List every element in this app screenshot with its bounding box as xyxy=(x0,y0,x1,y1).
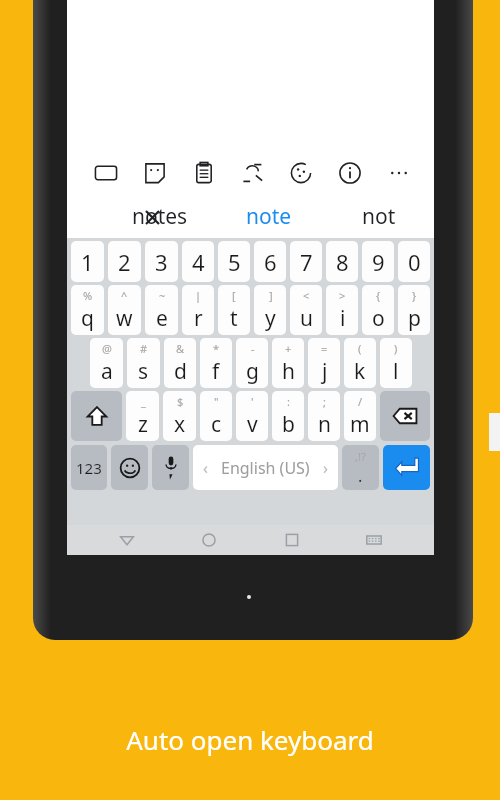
button[interactable]: info xyxy=(333,156,367,190)
button[interactable]: 8 xyxy=(326,241,358,282)
button[interactable]: ' xyxy=(236,391,268,441)
button[interactable]: ,!? xyxy=(342,445,379,490)
button[interactable]: 123 xyxy=(71,445,107,490)
button[interactable]: 9 xyxy=(362,241,394,282)
button[interactable]: notes xyxy=(105,195,214,238)
staticText: Auto open keyboard xyxy=(126,722,374,757)
button[interactable]: ) xyxy=(380,338,412,388)
staticText: 1 xyxy=(81,247,94,277)
button[interactable]: 7 xyxy=(290,241,322,282)
staticText: } xyxy=(412,288,417,303)
staticText: k xyxy=(354,357,366,386)
staticText: l xyxy=(393,357,399,386)
button[interactable]: } xyxy=(398,285,430,335)
button[interactable]: & xyxy=(164,338,196,388)
button[interactable]: Voice input xyxy=(152,445,189,490)
button[interactable]: : xyxy=(272,391,304,441)
staticText: / xyxy=(358,394,363,409)
staticText: ) xyxy=(394,341,398,356)
button[interactable]: ~ xyxy=(145,285,178,335)
button[interactable]: / xyxy=(344,391,376,441)
button[interactable]: % xyxy=(71,285,104,335)
button[interactable]: theme xyxy=(284,156,318,190)
button[interactable]: gif xyxy=(89,156,123,190)
staticText: * xyxy=(213,341,220,356)
staticText: 9 xyxy=(372,247,385,277)
button[interactable]: < xyxy=(290,285,322,335)
staticText: # xyxy=(140,341,148,356)
staticText: note xyxy=(246,202,292,231)
staticText: n xyxy=(318,410,331,439)
staticText: 3 xyxy=(155,247,168,277)
staticText: w xyxy=(116,304,133,333)
button[interactable]: { xyxy=(362,285,394,335)
button[interactable]: - xyxy=(236,338,268,388)
button[interactable]: Enter xyxy=(383,445,430,490)
button[interactable]: ( xyxy=(344,338,376,388)
staticText: - xyxy=(251,341,255,356)
button[interactable]: not xyxy=(324,195,434,238)
button[interactable]: > xyxy=(326,285,358,335)
staticText: b xyxy=(282,410,295,439)
button[interactable]: Close xyxy=(137,202,167,232)
button[interactable]: 5 xyxy=(218,241,250,282)
staticText: 8 xyxy=(336,247,349,277)
button[interactable]: Backspace xyxy=(380,391,430,441)
button[interactable]: clipboard xyxy=(187,156,221,190)
staticText: ~ xyxy=(159,288,166,303)
staticText: ,!? xyxy=(355,449,366,464)
staticText: i xyxy=(340,304,346,333)
button[interactable]: [ xyxy=(218,285,250,335)
staticText: x xyxy=(174,410,186,439)
button[interactable]: Home xyxy=(187,526,231,554)
button[interactable]: " xyxy=(200,391,232,441)
button[interactable]: 3 xyxy=(145,241,178,282)
staticText: : xyxy=(287,394,290,409)
staticText: ( xyxy=(358,341,362,356)
button[interactable]: # xyxy=(127,338,160,388)
button[interactable]: | xyxy=(182,285,214,335)
staticText: u xyxy=(300,304,313,333)
staticText: | xyxy=(195,288,202,303)
staticText: { xyxy=(376,288,381,303)
button[interactable]: + xyxy=(272,338,304,388)
button[interactable]: @ xyxy=(90,338,123,388)
staticText: [ xyxy=(232,288,236,303)
button[interactable]: Emoji xyxy=(111,445,148,490)
button[interactable]: Recents xyxy=(270,526,314,554)
button[interactable]: Back xyxy=(105,526,149,554)
staticText: 2 xyxy=(118,247,131,277)
button[interactable]: 4 xyxy=(182,241,214,282)
staticText: r xyxy=(194,304,203,333)
staticText: ] xyxy=(269,288,273,303)
staticText: y xyxy=(265,304,276,333)
button[interactable]: ; xyxy=(308,391,340,441)
staticText: $ xyxy=(177,394,184,409)
staticText: p xyxy=(408,304,421,333)
staticText: g xyxy=(246,357,259,386)
button[interactable]: 0 xyxy=(398,241,430,282)
button[interactable]: more xyxy=(382,156,416,190)
button[interactable]: 1 xyxy=(71,241,104,282)
button[interactable]: * xyxy=(200,338,232,388)
staticText: v xyxy=(247,410,258,439)
button[interactable]: Shift xyxy=(71,391,122,441)
staticText: t xyxy=(230,304,238,333)
button[interactable]: ] xyxy=(254,285,286,335)
button[interactable]: sticker xyxy=(138,156,172,190)
button[interactable]: 2 xyxy=(108,241,141,282)
staticText: = xyxy=(321,341,328,356)
button[interactable]: translate xyxy=(236,156,270,190)
button[interactable]: = xyxy=(308,338,340,388)
staticText: e xyxy=(156,304,168,333)
staticText: . xyxy=(358,465,363,487)
button[interactable]: note xyxy=(214,195,324,238)
button[interactable]: ^ xyxy=(108,285,141,335)
staticText: > xyxy=(339,288,346,303)
button[interactable]: $ xyxy=(163,391,196,441)
staticText: d xyxy=(174,357,187,386)
button[interactable]: _ xyxy=(126,391,159,441)
button[interactable]: Keyboard xyxy=(352,526,396,554)
button[interactable]: 6 xyxy=(254,241,286,282)
button[interactable]: ‹ xyxy=(193,445,338,490)
